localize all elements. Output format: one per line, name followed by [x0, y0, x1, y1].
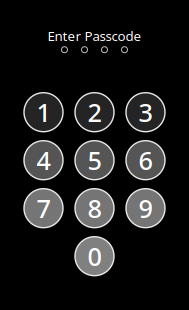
- staticText: 1: [36, 95, 50, 129]
- staticText: 8: [87, 191, 101, 225]
- button[interactable]: 1: [24, 93, 63, 132]
- staticText: 4: [36, 143, 50, 177]
- button[interactable]: 6: [126, 141, 165, 180]
- button[interactable]: 7: [24, 189, 63, 228]
- button[interactable]: 0: [75, 237, 114, 276]
- staticText: 5: [87, 143, 101, 177]
- button[interactable]: 4: [24, 141, 63, 180]
- button[interactable]: 8: [75, 189, 114, 228]
- button[interactable]: 5: [75, 141, 114, 180]
- staticText: 3: [138, 95, 152, 129]
- button[interactable]: 9: [126, 189, 165, 228]
- staticText: 2: [87, 95, 101, 129]
- button[interactable]: 2: [75, 93, 114, 132]
- staticText: 7: [36, 191, 50, 225]
- button[interactable]: 3: [126, 93, 165, 132]
- staticText: Enter Passcode: [47, 27, 141, 45]
- staticText: 0: [87, 239, 101, 273]
- staticText: 9: [138, 191, 152, 225]
- staticText: 6: [138, 143, 152, 177]
